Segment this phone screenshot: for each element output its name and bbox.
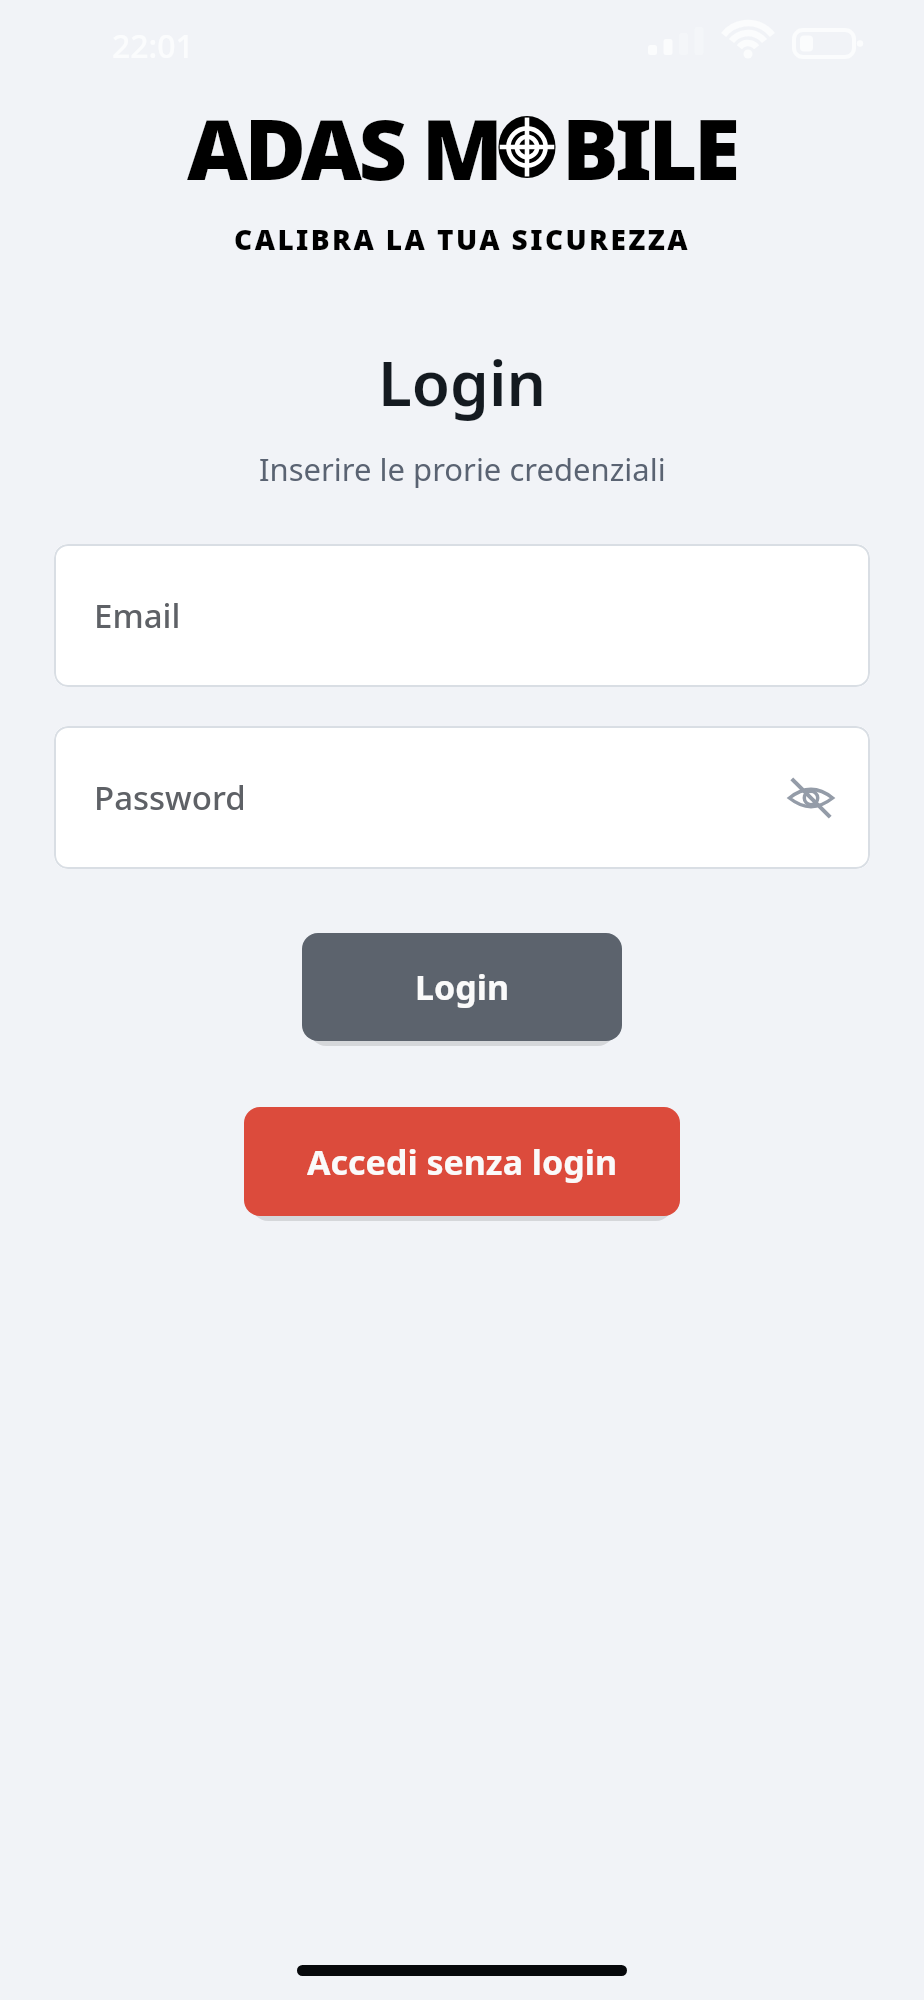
staticText: Accedi senza login [307,1139,617,1185]
staticText: BILE [562,90,737,204]
staticText: Email [94,593,181,638]
button[interactable]: Show password [778,765,844,831]
button[interactable]: Login [302,933,622,1041]
staticText: CALIBRA LA TUA SICUREZZA [234,220,690,258]
staticText: ADAS M [187,90,500,204]
staticText: Login [415,964,510,1010]
button[interactable]: Email [54,544,870,687]
staticText: Password [94,775,246,820]
button[interactable]: Password [54,726,870,869]
button[interactable]: Accedi senza login [244,1107,680,1216]
staticText: Login [378,340,547,424]
staticText: Inserire le prorie credenziali [259,448,666,490]
staticText: 22:01 [112,24,194,68]
